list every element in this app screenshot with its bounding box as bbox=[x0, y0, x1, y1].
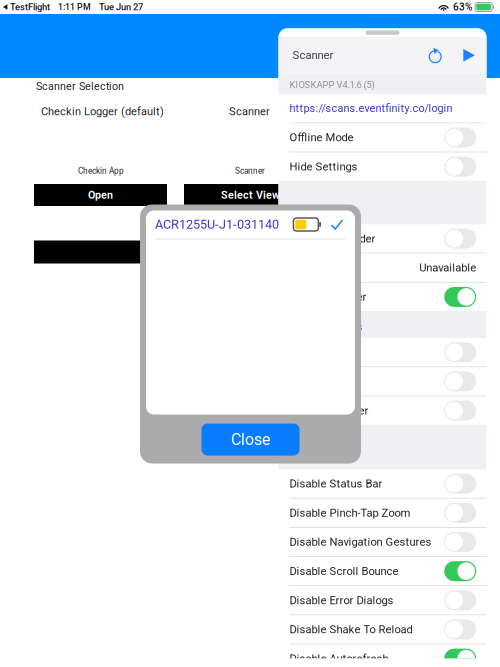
button[interactable]: Offline Mode bbox=[278, 123, 486, 152]
button[interactable]: Disable Navigation Gestures bbox=[278, 528, 486, 556]
staticText: TestFlight bbox=[10, 1, 50, 12]
button[interactable]: Disable Status Bar bbox=[278, 470, 486, 498]
staticText: Tue Jun 27 bbox=[99, 1, 143, 12]
staticText: Bluetooth Reader bbox=[289, 232, 375, 245]
button[interactable]: Select View bbox=[184, 184, 317, 206]
button[interactable]: Reload bbox=[426, 40, 444, 70]
button[interactable]: Go bbox=[461, 40, 475, 70]
staticText: Disable Status Bar bbox=[289, 477, 382, 490]
staticText: Scanner Selection bbox=[36, 80, 124, 92]
button[interactable]: Barcode Reader bbox=[278, 396, 486, 425]
staticText: Select View bbox=[221, 189, 280, 201]
staticText: Checkin App bbox=[78, 166, 124, 176]
staticText: Disable Scroll Bounce bbox=[289, 565, 398, 578]
button[interactable]: Disable Autorefresh bbox=[278, 644, 486, 667]
button[interactable]: Disable Pinch-Tap Zoom bbox=[278, 499, 486, 527]
staticText: https://scans.eventfinity.co/login bbox=[289, 102, 452, 115]
button[interactable]: https://scans.eventfinity.co/login bbox=[278, 94, 486, 122]
staticText: 63% bbox=[453, 1, 472, 13]
staticText: Camera Reader bbox=[289, 290, 366, 303]
button[interactable]: Disable Error Dialogs bbox=[278, 586, 486, 614]
staticText: Checkin Logger (default) bbox=[41, 105, 164, 118]
staticText: Scanner bbox=[235, 166, 265, 176]
button[interactable]: Disable Shake To Reload bbox=[278, 615, 486, 643]
staticText: Disable Shake To Reload bbox=[289, 623, 412, 636]
staticText: Hide Settings bbox=[289, 160, 357, 173]
staticText: App Settings bbox=[289, 319, 362, 334]
staticText: Open bbox=[88, 189, 113, 201]
staticText: Disable Navigation Gestures bbox=[289, 535, 431, 549]
staticText: Close bbox=[231, 430, 270, 449]
staticText: Scanner bbox=[229, 105, 270, 118]
staticText: Offline Mode bbox=[289, 131, 353, 144]
button[interactable]: Hide Settings bbox=[278, 153, 486, 181]
staticText: ACR1255U-J1-031140 bbox=[155, 217, 279, 232]
button[interactable]: NFC Reader bbox=[278, 254, 486, 282]
staticText: Scanner bbox=[292, 49, 333, 62]
staticText: Disable Pinch-Tap Zoom bbox=[289, 506, 410, 519]
button[interactable]: Bluetooth Reader bbox=[278, 225, 486, 253]
staticText: KIOSKAPP V4.1.6 (5) bbox=[289, 79, 374, 90]
button[interactable]: Disable Scroll Bounce bbox=[278, 557, 486, 585]
staticText: Disable Autorefresh bbox=[289, 652, 388, 665]
staticText: 1:11 PM bbox=[58, 2, 91, 12]
button[interactable]: Sound bbox=[278, 367, 486, 395]
button[interactable]: Camera Reader bbox=[278, 283, 486, 311]
staticText: Unavailable bbox=[419, 261, 476, 274]
button[interactable]: Open bbox=[34, 184, 167, 206]
staticText: Disable Error Dialogs bbox=[289, 594, 393, 607]
staticText: Barcode Reader bbox=[289, 404, 368, 417]
button[interactable]: Vibrate bbox=[278, 338, 486, 366]
button[interactable]: Close bbox=[201, 423, 299, 455]
